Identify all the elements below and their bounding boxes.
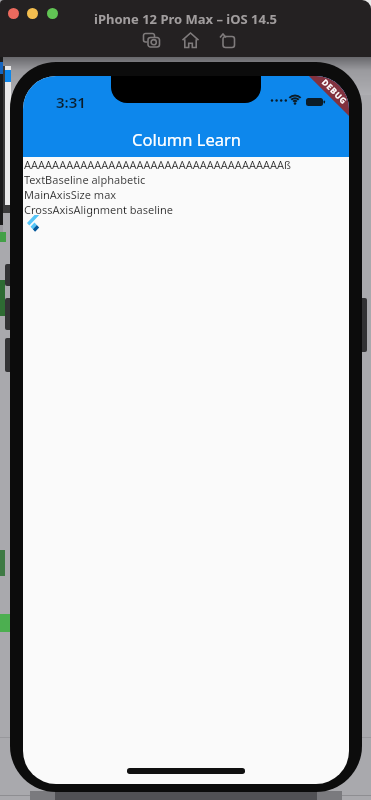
staticText: 3:31 — [56, 92, 86, 112]
staticText: Column Learn — [132, 128, 241, 150]
staticText: AAAAAAAAAAAAAAAAAAAAAAAAAAAAAAAAAAAAAß — [24, 157, 292, 172]
button[interactable] — [8, 8, 19, 19]
button[interactable] — [47, 8, 58, 19]
staticText: MainAxisSize max — [24, 187, 117, 202]
button[interactable] — [181, 31, 200, 50]
staticText: CrossAxisAlignment baseline — [24, 202, 173, 217]
button[interactable] — [27, 8, 38, 19]
staticText: TextBaseline alphabetic — [24, 172, 146, 187]
staticText: iPhone 12 Pro Max – iOS 14.5 — [94, 10, 278, 28]
staticText: DEBUG — [320, 76, 349, 107]
button[interactable] — [218, 31, 238, 50]
button[interactable] — [142, 31, 162, 50]
